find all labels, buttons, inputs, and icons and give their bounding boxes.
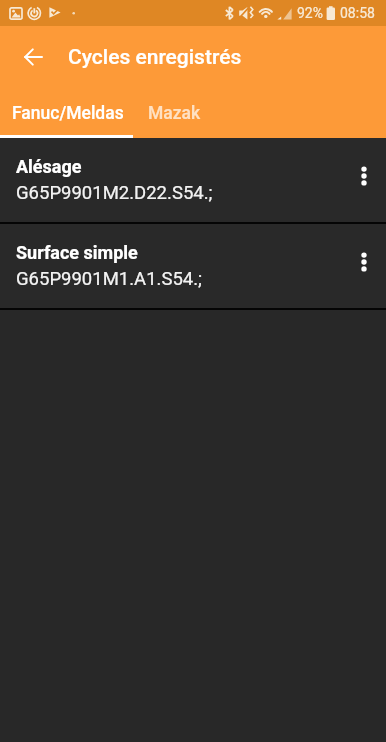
staticText: 92%: [297, 5, 323, 21]
staticText: G65P9901M1.A1.S54.;: [16, 268, 202, 290]
staticText: Cycles enregistrés: [68, 45, 242, 70]
staticText: Mazak: [148, 103, 201, 124]
button[interactable]: Surface simple: [0, 224, 386, 308]
button[interactable]: Alésage: [0, 138, 386, 222]
staticText: Fanuc/Meldas: [12, 103, 124, 124]
button[interactable]: More options: [342, 240, 386, 284]
staticText: 08:58: [340, 5, 375, 21]
staticText: G65P9901M2.D22.S54.;: [16, 182, 213, 204]
button[interactable]: Mazak: [136, 87, 212, 138]
button[interactable]: More options: [342, 154, 386, 198]
button[interactable]: Back: [9, 33, 57, 81]
staticText: Alésage: [16, 156, 82, 177]
staticText: Surface simple: [16, 242, 138, 263]
button[interactable]: Fanuc/Meldas: [0, 87, 136, 138]
